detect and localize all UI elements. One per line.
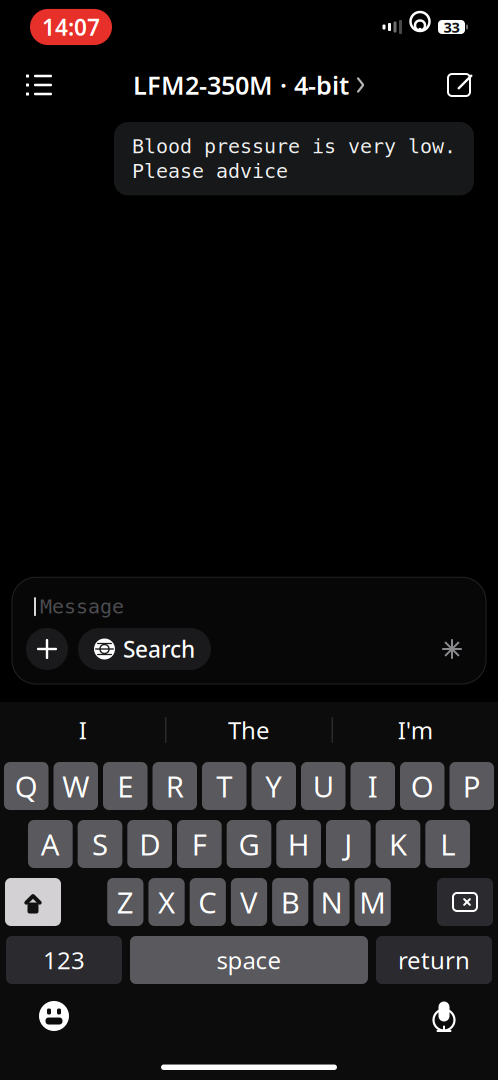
- button[interactable]: return: [376, 936, 492, 984]
- staticText: S: [92, 824, 108, 863]
- staticText: Q: [15, 766, 38, 805]
- button[interactable]: The: [166, 702, 332, 758]
- staticText: Message: [40, 595, 124, 618]
- button[interactable]: J: [326, 820, 371, 868]
- button[interactable]: Loading: [432, 629, 472, 669]
- button[interactable]: I: [0, 702, 165, 758]
- button[interactable]: C: [190, 878, 226, 926]
- button[interactable]: U: [301, 762, 345, 810]
- staticText: 33: [443, 17, 459, 37]
- button[interactable]: L: [425, 820, 470, 868]
- button[interactable]: P: [449, 762, 494, 810]
- staticText: A: [41, 824, 60, 863]
- staticText: return: [398, 944, 470, 976]
- staticText: N: [320, 882, 342, 921]
- staticText: I: [79, 714, 87, 746]
- button[interactable]: Y: [251, 762, 296, 810]
- staticText: F: [192, 824, 207, 863]
- staticText: I: [368, 766, 378, 805]
- button[interactable]: Q: [4, 762, 48, 810]
- button[interactable]: T: [202, 762, 246, 810]
- staticText: G: [238, 824, 259, 863]
- staticText: 123: [43, 944, 85, 976]
- staticText: J: [344, 824, 352, 863]
- button[interactable]: I: [350, 762, 395, 810]
- button[interactable]: space: [130, 936, 368, 984]
- button[interactable]: B: [272, 878, 308, 926]
- button[interactable]: M: [355, 878, 391, 926]
- staticText: E: [117, 766, 133, 805]
- button[interactable]: I'm: [333, 702, 498, 758]
- staticText: L: [440, 824, 455, 863]
- button[interactable]: Search: [78, 628, 211, 670]
- button[interactable]: Z: [107, 878, 143, 926]
- button[interactable]: A: [28, 820, 73, 868]
- staticText: U: [313, 766, 334, 805]
- staticText: P: [463, 766, 481, 805]
- button[interactable]: G: [227, 820, 271, 868]
- staticText: B: [281, 882, 300, 921]
- staticText: Blood pressure is very low.: [132, 135, 456, 158]
- staticText: Please advice: [132, 160, 288, 182]
- staticText: M: [359, 882, 386, 921]
- button[interactable]: S: [78, 820, 122, 868]
- staticText: Search: [123, 634, 195, 664]
- staticText: Y: [265, 766, 282, 805]
- button[interactable]: 123: [6, 936, 122, 984]
- staticText: The: [228, 714, 270, 746]
- button[interactable]: LFM2-350M · 4-bit: [127, 62, 371, 108]
- staticText: K: [389, 824, 407, 863]
- button[interactable]: Dictate: [420, 992, 468, 1040]
- button[interactable]: E: [103, 762, 147, 810]
- button[interactable]: O: [400, 762, 444, 810]
- staticText: 14:07: [42, 12, 100, 42]
- button[interactable]: R: [152, 762, 197, 810]
- button[interactable]: Add attachment: [26, 628, 68, 670]
- button[interactable]: W: [53, 762, 98, 810]
- staticText: C: [198, 882, 217, 921]
- button[interactable]: Shift: [5, 878, 61, 926]
- staticText: O: [411, 766, 434, 805]
- button[interactable]: H: [276, 820, 321, 868]
- button[interactable]: V: [231, 878, 267, 926]
- button[interactable]: Emoji: [30, 992, 78, 1040]
- staticText: W: [62, 766, 89, 805]
- button[interactable]: F: [177, 820, 222, 868]
- staticText: V: [240, 882, 258, 921]
- staticText: LFM2-350M · 4-bit: [133, 68, 349, 102]
- button[interactable]: Conversations: [16, 62, 62, 108]
- staticText: Z: [117, 882, 134, 921]
- staticText: I'm: [398, 714, 433, 746]
- staticText: R: [166, 766, 184, 805]
- staticText: space: [216, 944, 281, 976]
- staticText: X: [158, 882, 175, 921]
- button[interactable]: K: [376, 820, 420, 868]
- button[interactable]: D: [127, 820, 172, 868]
- staticText: H: [288, 824, 310, 863]
- button[interactable]: N: [313, 878, 349, 926]
- button[interactable]: New chat: [436, 62, 482, 108]
- staticText: D: [139, 824, 160, 863]
- button[interactable]: X: [148, 878, 185, 926]
- staticText: T: [216, 766, 232, 805]
- button[interactable]: Delete: [437, 878, 493, 926]
